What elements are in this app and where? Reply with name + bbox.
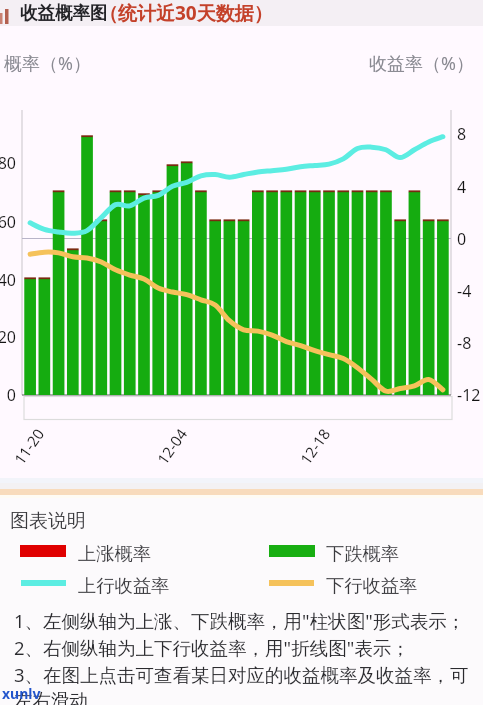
button[interactable]: Chart icon: [0, 0, 483, 26]
staticText: 11-20: [9, 424, 49, 468]
staticText: 20: [0, 326, 16, 348]
button[interactable]: 下跌概率: [326, 542, 400, 565]
staticText: -12: [457, 384, 481, 406]
staticText: 0: [0, 384, 16, 406]
staticText: -4: [457, 280, 472, 302]
staticText: 下行收益率: [326, 574, 418, 597]
staticText: 60: [0, 211, 16, 233]
button[interactable]: 上行收益率: [78, 574, 170, 597]
staticText: 40: [0, 269, 16, 291]
staticText: xunlv: [2, 684, 41, 703]
staticText: 上涨概率: [78, 542, 152, 565]
staticText: 概率（%）: [4, 51, 91, 76]
staticText: 上行收益率: [78, 574, 170, 597]
staticText: 1、左侧纵轴为上涨、下跌概率，用"柱状图"形式表示；: [14, 608, 466, 633]
staticText: 4: [457, 176, 467, 198]
staticText: 80: [0, 152, 16, 174]
staticText: （统计近30天数据）: [99, 0, 273, 26]
staticText: -8: [457, 332, 472, 354]
staticText: 下跌概率: [326, 542, 400, 565]
staticText: 收益概率图: [20, 2, 108, 24]
staticText: 12-18: [295, 424, 335, 468]
button[interactable]: 下行收益率: [326, 574, 418, 597]
staticText: 12-04: [152, 424, 192, 468]
other: Chart icon: [0, 7, 10, 24]
staticText: 8: [457, 123, 467, 145]
staticText: 收益率（%）: [369, 51, 474, 76]
staticText: 2、右侧纵轴为上下行收益率，用"折线图"表示；: [14, 635, 410, 660]
staticText: 图表说明: [10, 509, 86, 533]
button[interactable]: 上涨概率: [78, 542, 152, 565]
staticText: 左右滑动。: [14, 689, 107, 705]
staticText: 3、在图上点击可查看某日对应的收益概率及收益率，可: [14, 662, 469, 687]
staticText: 0: [457, 228, 467, 250]
